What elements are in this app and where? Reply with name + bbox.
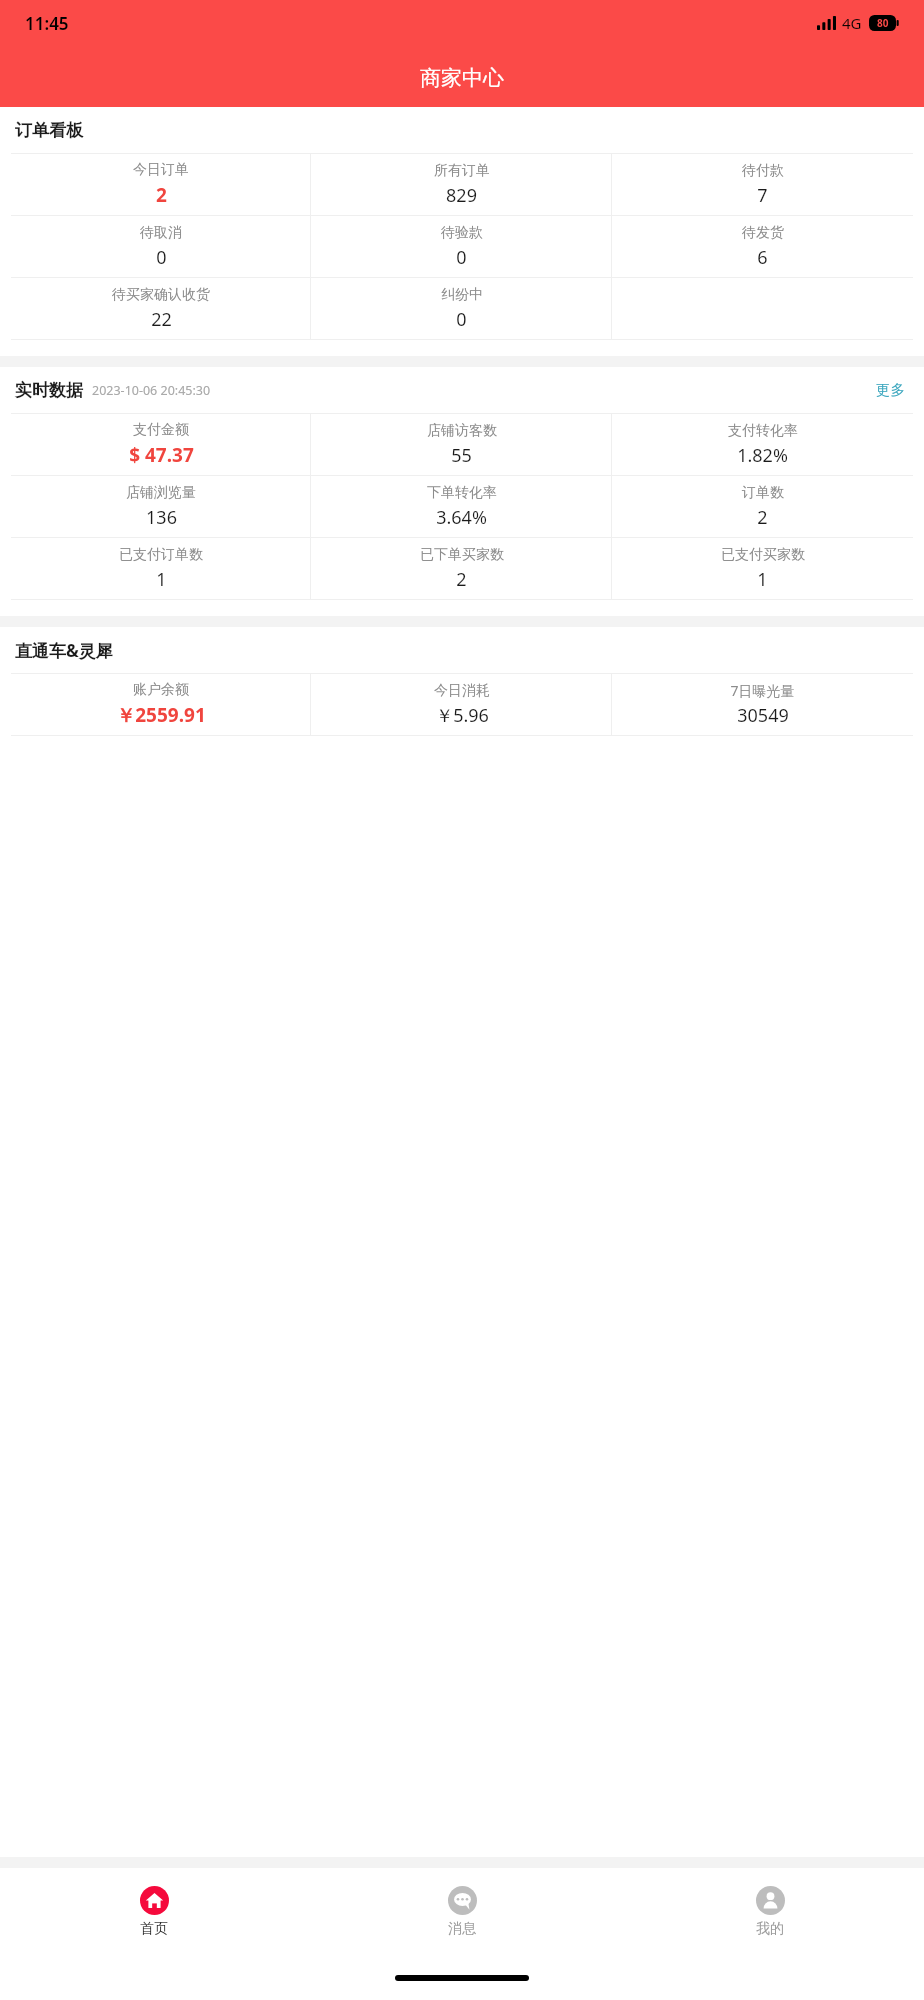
staticText: 0 [156, 245, 167, 270]
button[interactable]: 店铺浏览量 [11, 476, 311, 537]
staticText: 待取消 [140, 224, 182, 242]
staticText: 已下单买家数 [420, 546, 504, 564]
button[interactable]: 7日曝光量 [612, 674, 913, 735]
button[interactable]: 待发货 [612, 216, 913, 277]
staticText: 店铺浏览量 [126, 484, 196, 502]
button[interactable]: 订单数 [612, 476, 913, 537]
button[interactable]: 支付金额 [11, 414, 311, 475]
button[interactable]: 今日消耗 [311, 674, 612, 735]
button[interactable]: 待付款 [612, 154, 913, 215]
staticText: ￥2559.91 [116, 702, 206, 728]
staticText: 1 [156, 567, 167, 592]
staticText: 1.82% [737, 443, 788, 468]
staticText: 更多 [876, 381, 905, 399]
staticText: 7日曝光量 [730, 681, 795, 700]
button[interactable]: 下单转化率 [311, 476, 612, 537]
staticText: 22 [151, 307, 172, 332]
staticText: 30549 [737, 703, 789, 728]
staticText: 0 [456, 245, 467, 270]
staticText: 55 [451, 443, 472, 468]
staticText: $ 47.37 [129, 442, 194, 468]
staticText: 下单转化率 [427, 484, 497, 502]
staticText: 直通车&灵犀 [15, 639, 113, 662]
staticText: 实时数据 [15, 380, 83, 401]
button[interactable]: 已下单买家数 [311, 538, 612, 599]
staticText: 纠纷中 [441, 286, 483, 304]
button[interactable]: 已支付买家数 [612, 538, 913, 599]
staticText: 支付金额 [133, 421, 189, 439]
button[interactable]: 店铺访客数 [311, 414, 612, 475]
staticText: 829 [446, 183, 477, 208]
staticText: 消息 [448, 1920, 476, 1938]
staticText: 已支付订单数 [119, 546, 203, 564]
button[interactable]: 今日订单 [11, 154, 311, 215]
staticText: 4G [842, 13, 862, 33]
staticText: 待验款 [441, 224, 483, 242]
staticText: 订单数 [742, 484, 784, 502]
staticText: 7 [757, 183, 768, 208]
staticText: 136 [146, 505, 177, 530]
staticText: 已支付买家数 [721, 546, 805, 564]
staticText: 2 [456, 567, 467, 592]
staticText: 支付转化率 [728, 422, 798, 440]
button[interactable]: 待取消 [11, 216, 311, 277]
staticText: 待发货 [742, 224, 784, 242]
button[interactable]: 纠纷中 [311, 278, 612, 339]
staticText: 今日消耗 [434, 682, 490, 700]
staticText: 2 [757, 505, 768, 530]
button[interactable]: 待验款 [311, 216, 612, 277]
button[interactable]: 已支付订单数 [11, 538, 311, 599]
staticText: 账户余额 [133, 681, 189, 699]
button[interactable]: Home [0, 1868, 308, 1956]
button[interactable]: 所有订单 [311, 154, 612, 215]
staticText: 店铺访客数 [427, 422, 497, 440]
button[interactable]: 待买家确认收货 [11, 278, 311, 339]
staticText: 商家中心 [420, 65, 504, 91]
other: Profile [756, 1886, 785, 1915]
button[interactable]: 更多 [872, 377, 909, 403]
staticText: 2 [156, 182, 167, 208]
staticText: 我的 [756, 1920, 784, 1938]
staticText: ￥5.96 [435, 703, 489, 728]
button[interactable]: Messages [308, 1868, 616, 1956]
staticText: 80 [877, 16, 889, 30]
staticText: 11:45 [25, 12, 69, 35]
staticText: 2023-10-06 20:45:30 [92, 382, 211, 399]
staticText: 首页 [140, 1920, 168, 1938]
staticText: 今日订单 [133, 161, 189, 179]
other: Messages [448, 1886, 477, 1915]
staticText: 订单看板 [15, 120, 83, 141]
button[interactable]: 账户余额 [11, 674, 311, 735]
staticText: 所有订单 [434, 162, 490, 180]
button[interactable]: Profile [616, 1868, 924, 1956]
staticText: 3.64% [436, 505, 487, 530]
staticText: 0 [456, 307, 467, 332]
staticText: 待买家确认收货 [112, 286, 210, 304]
button[interactable]: 支付转化率 [612, 414, 913, 475]
staticText: 1 [757, 567, 768, 592]
other: Home [140, 1886, 169, 1915]
staticText: 6 [757, 245, 768, 270]
staticText: 待付款 [742, 162, 784, 180]
